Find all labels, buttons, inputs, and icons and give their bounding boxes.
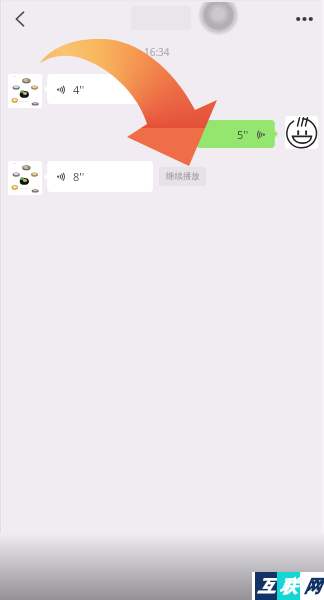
staticText: 网 bbox=[304, 576, 321, 597]
staticText: 16:34 bbox=[144, 45, 170, 59]
button[interactable]: 5'' bbox=[196, 120, 278, 148]
staticText: 5'' bbox=[237, 127, 249, 142]
button[interactable]: 4'' bbox=[44, 74, 152, 104]
staticText: 继续播放 bbox=[166, 171, 200, 182]
button[interactable]: More options bbox=[286, 1, 322, 37]
staticText: 8'' bbox=[73, 169, 85, 184]
button[interactable]: 8'' bbox=[44, 161, 153, 192]
staticText: 联 bbox=[280, 576, 297, 597]
staticText: 4'' bbox=[73, 82, 85, 97]
button[interactable]: 继续播放 bbox=[159, 167, 206, 186]
button[interactable]: Back bbox=[2, 1, 38, 37]
staticText: 互 bbox=[258, 576, 275, 597]
